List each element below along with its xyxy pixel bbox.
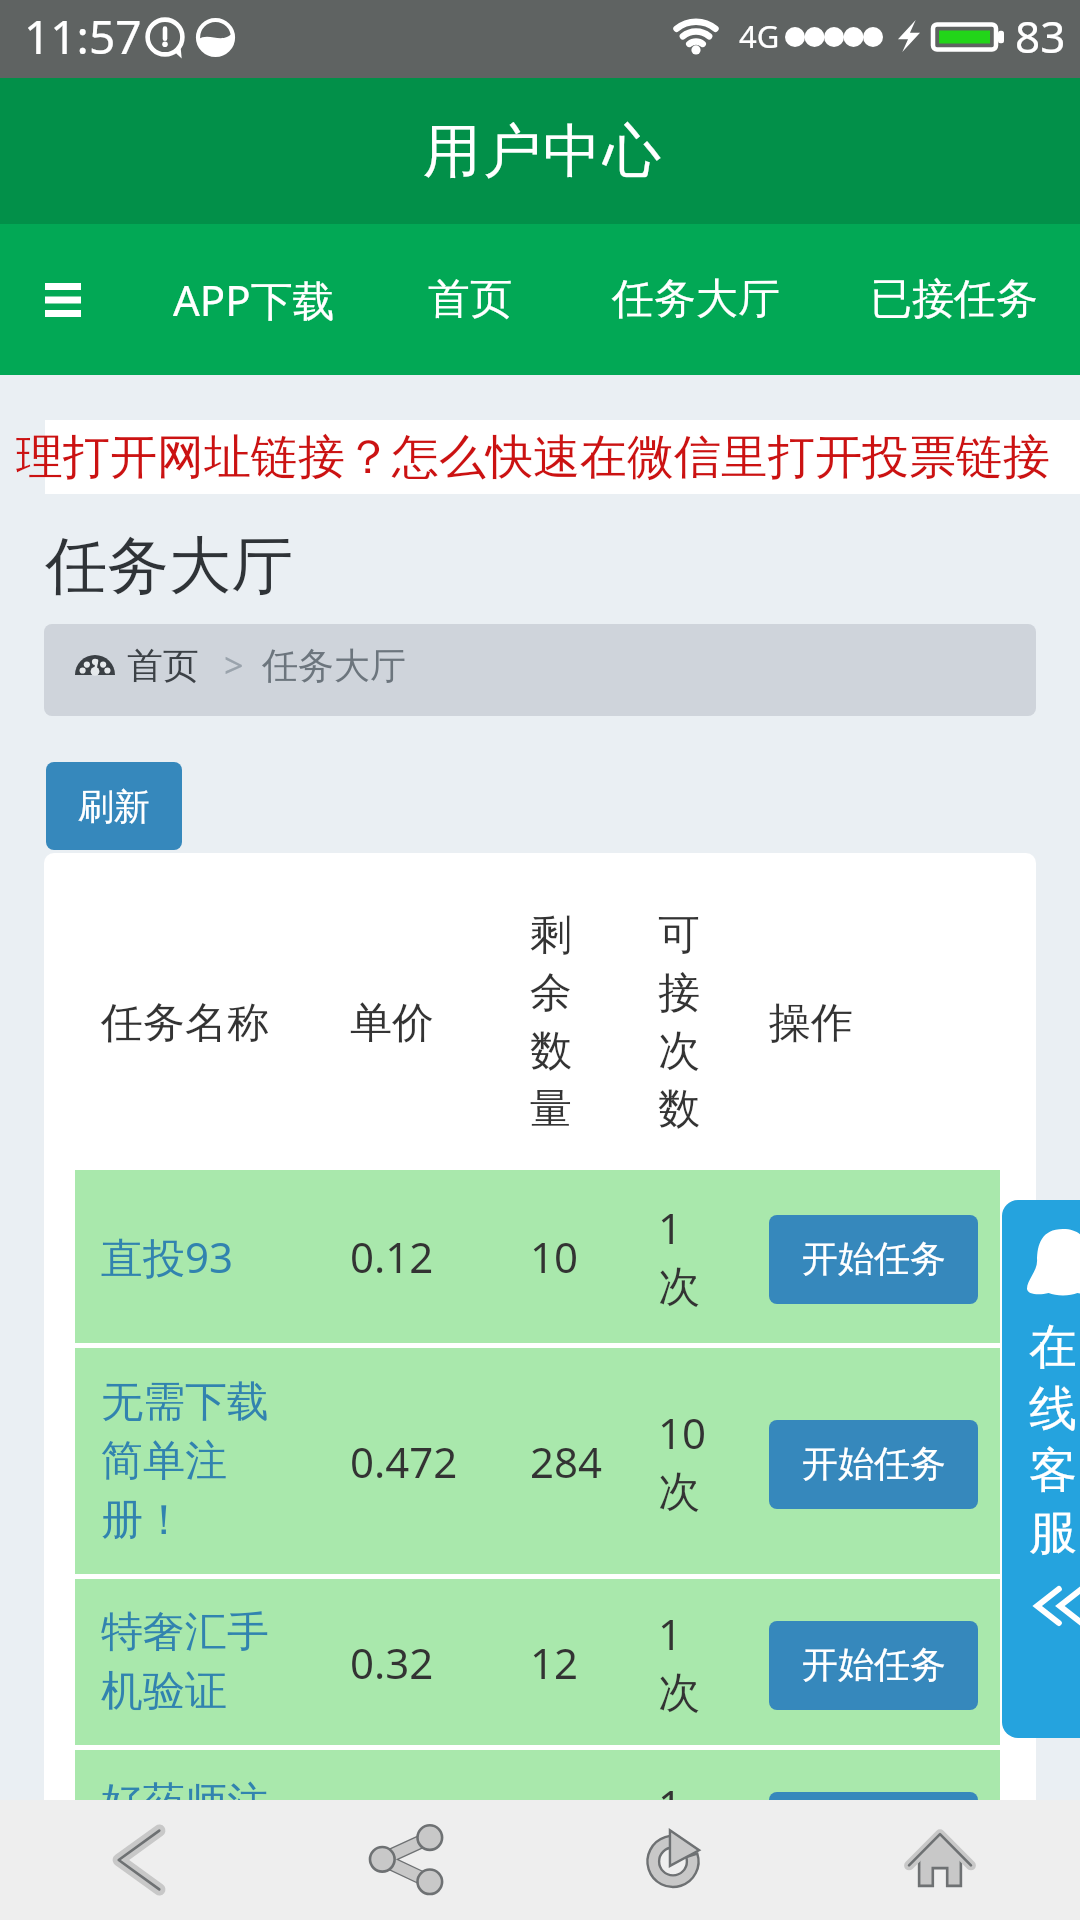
button[interactable]: Share bbox=[347, 1800, 467, 1920]
staticText: 开始任务 bbox=[802, 1642, 946, 1687]
staticText: 284 bbox=[530, 1433, 603, 1490]
button[interactable]: Menu bbox=[30, 267, 96, 333]
staticText: 1 次 bbox=[658, 1776, 700, 1891]
staticText: 用户中心 bbox=[422, 115, 662, 188]
button[interactable]: 在线客服 bbox=[1002, 1200, 1080, 1738]
button[interactable]: 任务大厅 bbox=[594, 224, 798, 375]
staticText: 特奢汇手 机验证 bbox=[101, 1606, 269, 1718]
staticText: APP下载 bbox=[173, 271, 335, 328]
staticText: 1 次 bbox=[658, 1605, 700, 1720]
staticText: 开始任务 bbox=[802, 1236, 946, 1281]
button[interactable]: 开始任务 bbox=[769, 1792, 978, 1881]
staticText: 好药师注 册 bbox=[101, 1777, 269, 1889]
button[interactable]: 刷新 bbox=[46, 762, 182, 850]
staticText: 任务大厅 bbox=[45, 527, 293, 605]
staticText: 83 bbox=[1015, 6, 1066, 66]
staticText: 操作 bbox=[769, 997, 853, 1050]
button[interactable]: Back bbox=[79, 1800, 199, 1920]
staticText: 0.472 bbox=[350, 1433, 458, 1490]
button[interactable]: 开始任务 bbox=[769, 1215, 978, 1304]
staticText: 无需下载 简单注 册！ bbox=[101, 1376, 269, 1547]
staticText: 开始任务 bbox=[802, 1441, 946, 1486]
staticText: 4G bbox=[739, 15, 780, 57]
button[interactable]: 无需下载 简单注 册！ bbox=[75, 1348, 1000, 1574]
button[interactable]: 特奢汇手 机验证 bbox=[75, 1579, 1000, 1745]
staticText: 1 次 bbox=[658, 1199, 700, 1314]
button[interactable]: 首页 bbox=[44, 624, 1036, 716]
staticText: 任务大厅 bbox=[262, 643, 406, 688]
staticText: 单价 bbox=[350, 997, 434, 1050]
staticText: > bbox=[224, 642, 244, 688]
staticText: 已接任务 bbox=[870, 273, 1038, 326]
button[interactable]: 已接任务 bbox=[852, 224, 1056, 375]
staticText: 在 线 客 服 bbox=[1029, 1317, 1077, 1564]
staticText: 可 接 次 数 bbox=[658, 909, 700, 1136]
staticText: 任务名称 bbox=[101, 997, 269, 1050]
button[interactable]: 开始任务 bbox=[769, 1621, 978, 1710]
button[interactable]: APP下载 bbox=[155, 224, 353, 375]
staticText: 10 次 bbox=[658, 1404, 707, 1519]
staticText: 任务大厅 bbox=[612, 273, 780, 326]
button[interactable]: 直投93 bbox=[75, 1170, 1000, 1343]
staticText: 0.12 bbox=[350, 1228, 434, 1285]
staticText: 首页 bbox=[127, 643, 199, 688]
button[interactable]: 开始任务 bbox=[769, 1420, 978, 1509]
staticText: 11:57 bbox=[24, 5, 142, 68]
staticText: 首页 bbox=[428, 273, 512, 326]
button[interactable]: Refresh bbox=[613, 1800, 733, 1920]
staticText: 直投93 bbox=[101, 1228, 234, 1285]
staticText: 刷新 bbox=[78, 784, 150, 829]
staticText: 理打开网址链接？怎么快速在微信里打开投票链接地 bbox=[16, 428, 1080, 487]
button[interactable]: Home bbox=[880, 1800, 1000, 1920]
staticText: 12 bbox=[530, 1634, 579, 1691]
staticText: 0.32 bbox=[350, 1634, 434, 1691]
button[interactable]: 好药师注 册 bbox=[75, 1750, 1000, 1916]
staticText: 剩 余 数 量 bbox=[530, 909, 572, 1136]
button[interactable]: 首页 bbox=[410, 224, 530, 375]
staticText: 10 bbox=[530, 1228, 579, 1285]
staticText: 开始任务 bbox=[802, 1813, 946, 1858]
staticText: 0.3 bbox=[350, 1805, 410, 1862]
